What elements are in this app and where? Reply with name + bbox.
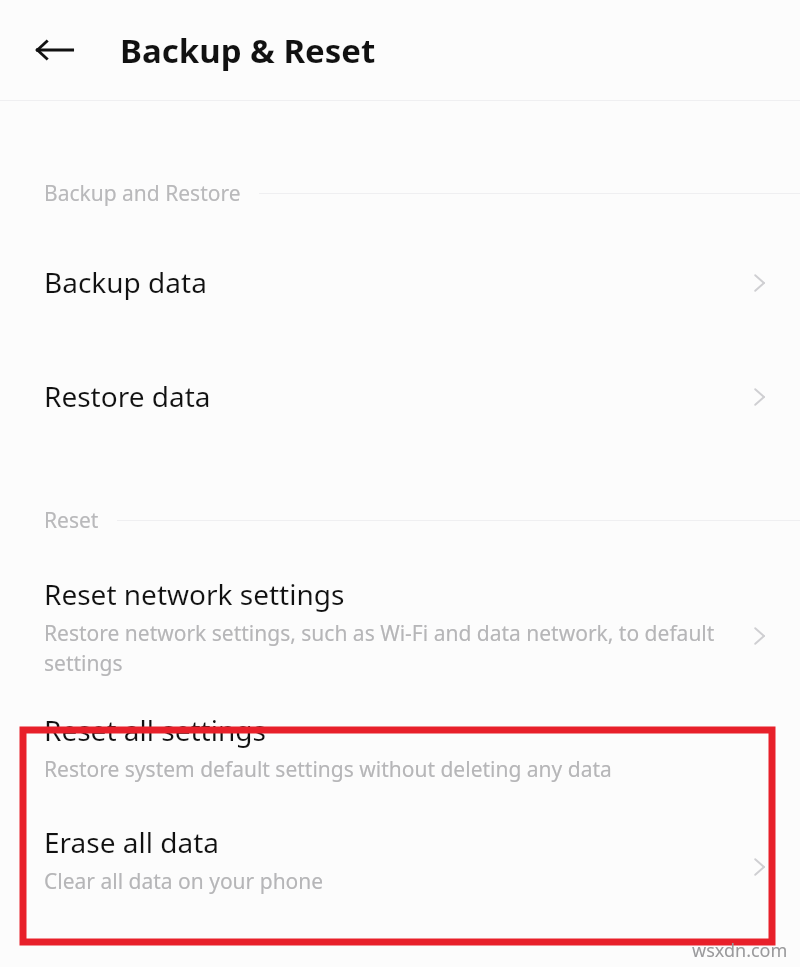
staticText: Backup & Reset [120, 28, 376, 73]
staticText: Restore data [44, 377, 211, 415]
button[interactable]: Restore data [0, 366, 800, 428]
button[interactable]: Reset network settings [0, 575, 800, 697]
button[interactable]: Reset all settings [0, 707, 800, 803]
staticText: Restore network settings, such as Wi-Fi … [44, 619, 724, 677]
staticText: Reset network settings [44, 575, 345, 613]
staticText: Reset [44, 506, 99, 535]
staticText: Backup data [44, 263, 207, 301]
staticText: wsxdn.com [692, 938, 788, 963]
staticText: Erase all data [44, 823, 219, 861]
staticText: Restore system default settings without … [44, 755, 612, 784]
button[interactable]: Erase all data [0, 819, 800, 915]
staticText: Clear all data on your phone [44, 867, 324, 896]
staticText: Backup and Restore [44, 179, 241, 208]
staticText: Reset all settings [44, 711, 266, 749]
button[interactable]: Back [26, 21, 84, 79]
button[interactable]: Backup data [0, 252, 800, 314]
